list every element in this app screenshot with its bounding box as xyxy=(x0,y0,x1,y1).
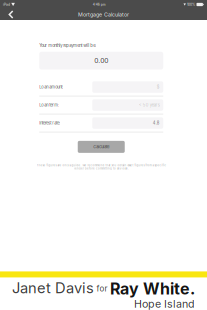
staticText: iPad xyxy=(3,3,10,6)
staticText: Your monthly repayment will be: xyxy=(39,43,96,48)
staticText: Ray White. xyxy=(110,279,195,298)
staticText: Janet Davis xyxy=(12,279,94,296)
staticText: for xyxy=(96,284,107,293)
staticText: < 50 years xyxy=(139,103,160,107)
staticText: 4.8 xyxy=(153,121,160,125)
staticText: 0.00 xyxy=(94,57,108,64)
staticText: 100% xyxy=(187,3,195,6)
button[interactable]: Back xyxy=(0,9,22,20)
staticText: 4:46 pm xyxy=(93,3,106,6)
staticText: These figures are only a guide. We recom… xyxy=(36,164,166,170)
staticText: Calculate xyxy=(93,145,109,149)
staticText: Loan term: xyxy=(39,103,59,107)
button[interactable]: Calculate xyxy=(78,141,125,153)
staticText: Interest rate: xyxy=(39,121,60,125)
staticText: Mortgage Calculator xyxy=(78,11,129,17)
staticText: $ xyxy=(157,85,160,89)
staticText: Hope Island xyxy=(134,298,195,310)
staticText: Loan amount: xyxy=(39,85,63,89)
